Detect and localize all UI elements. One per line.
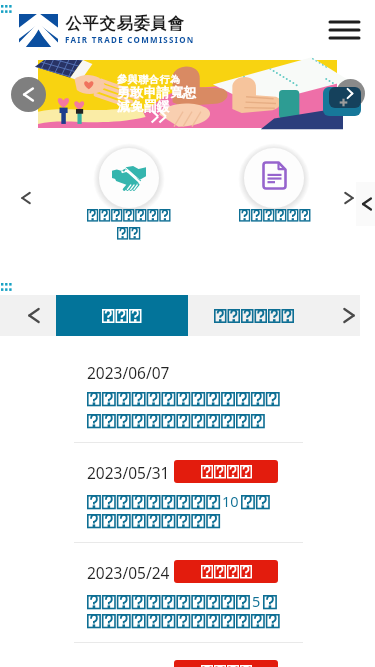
staticText: FAIR TRADE COMMISSION [65, 34, 195, 45]
button[interactable]: Accessibility tools [329, 87, 361, 108]
staticText: 減免罰鍰 [117, 98, 170, 114]
button[interactable]: Previous banner [11, 77, 46, 112]
staticText: 10 [222, 491, 239, 511]
staticText: 公平交易委員會 [65, 14, 184, 34]
button[interactable] [56, 295, 188, 336]
button[interactable]: Next tab [334, 295, 364, 336]
button[interactable] [188, 295, 320, 336]
button[interactable]: Previous shortcut [13, 185, 39, 211]
staticText: 2023/05/24 [87, 562, 170, 583]
button[interactable]: Next banner [336, 79, 365, 108]
button[interactable]: Previous tab [14, 295, 54, 336]
button[interactable]: 2023/05/24 [0, 655, 375, 667]
button[interactable]: Next shortcut [336, 185, 362, 211]
staticText: 5 [252, 591, 261, 611]
staticText: 2023/06/07 [87, 362, 170, 383]
staticText: 勇敢申請寬恕 [117, 84, 197, 100]
staticText: 2023/05/31 [87, 462, 170, 483]
staticText: 參與聯合行為 [117, 73, 181, 86]
button[interactable]: Open side panel [356, 182, 375, 226]
button[interactable]: 2023/06/07 [0, 355, 375, 455]
button[interactable]: 2023/05/24 [0, 555, 375, 655]
button[interactable]: Menu [325, 12, 365, 48]
button[interactable]: 2023/05/31 [0, 455, 375, 555]
